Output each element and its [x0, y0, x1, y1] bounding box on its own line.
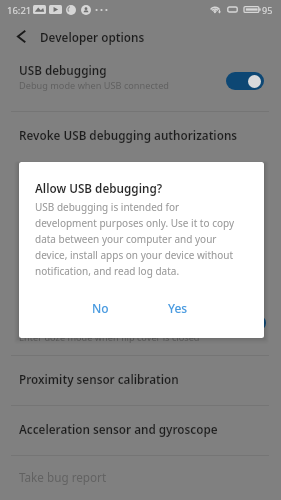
staticText: Revoke USB debugging authorizations [19, 127, 238, 143]
button[interactable]: Proximity sensor calibration [0, 356, 281, 404]
staticText: 16:21 [7, 4, 32, 17]
staticText: Allow USB debugging? [35, 180, 163, 196]
staticText: Debug mode when USB connected [19, 79, 169, 92]
button[interactable]: USB debugging switch [226, 72, 264, 90]
button[interactable]: Take bug report [0, 456, 281, 500]
staticText: Yes [168, 300, 188, 316]
staticText: USB debugging is intended for developmen… [35, 200, 243, 277]
button[interactable]: Enter doze mode when flip cover is close… [0, 307, 281, 355]
button[interactable]: Acceleration sensor and gyroscope [0, 406, 281, 454]
button[interactable]: Navigate up [3, 18, 39, 54]
button[interactable]: USB debugging [0, 55, 281, 111]
staticText: No [92, 300, 109, 316]
staticText: 95 [262, 4, 273, 16]
staticText: Acceleration sensor and gyroscope [19, 421, 218, 437]
staticText: Take bug report [19, 469, 107, 485]
staticText: USB debugging [19, 62, 107, 78]
button[interactable]: Revoke USB debugging authorizations [0, 112, 281, 160]
button[interactable]: Doze mode switch [228, 314, 266, 332]
button[interactable]: No [76, 294, 124, 322]
staticText: Developer options [40, 29, 145, 45]
staticText: Enter doze mode when flip cover is close… [19, 331, 200, 344]
button[interactable]: Yes [153, 294, 203, 322]
staticText: Proximity sensor calibration [19, 371, 179, 387]
